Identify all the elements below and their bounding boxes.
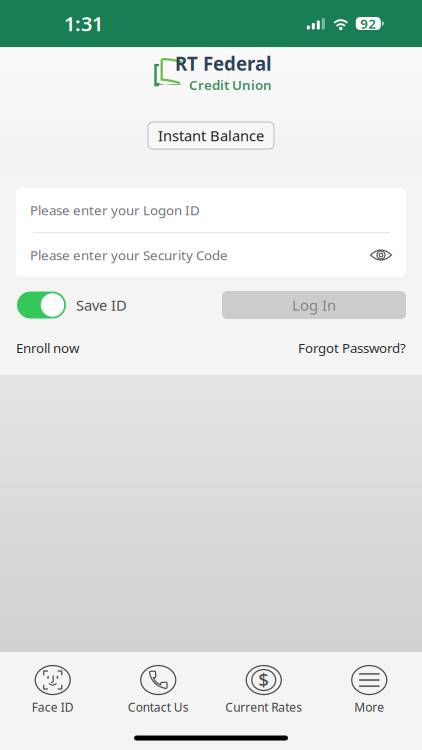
button[interactable]: Forgot Password? bbox=[298, 339, 406, 357]
staticText: Please enter your Security Code bbox=[30, 246, 228, 264]
staticText: More bbox=[354, 699, 384, 715]
staticText: Contact Us bbox=[128, 699, 189, 715]
staticText: 92 bbox=[360, 15, 376, 32]
staticText: $ bbox=[258, 667, 269, 692]
staticText: Forgot Password? bbox=[298, 339, 406, 357]
staticText: Save ID bbox=[76, 295, 127, 315]
button[interactable]: Enroll now bbox=[16, 339, 79, 357]
button[interactable]: Contact Us bbox=[105, 665, 211, 715]
staticText: Enroll now bbox=[16, 339, 79, 357]
staticText: RT Federal bbox=[175, 51, 272, 76]
button[interactable]: Face ID bbox=[0, 665, 105, 715]
button[interactable]: Show security code bbox=[369, 246, 393, 264]
staticText: Log In bbox=[292, 295, 336, 315]
staticText: Please enter your Logon ID bbox=[30, 201, 200, 219]
button[interactable]: $ bbox=[211, 665, 316, 715]
staticText: 1:31 bbox=[64, 10, 103, 37]
button[interactable]: Save ID bbox=[17, 291, 127, 318]
staticText: Credit Union bbox=[189, 76, 272, 94]
button[interactable]: More bbox=[316, 665, 422, 715]
button[interactable]: Log In bbox=[222, 291, 406, 319]
button[interactable]: Instant Balance bbox=[148, 122, 274, 149]
staticText: Instant Balance bbox=[158, 126, 264, 145]
staticText: Face ID bbox=[32, 699, 74, 715]
staticText: Current Rates bbox=[225, 699, 302, 715]
